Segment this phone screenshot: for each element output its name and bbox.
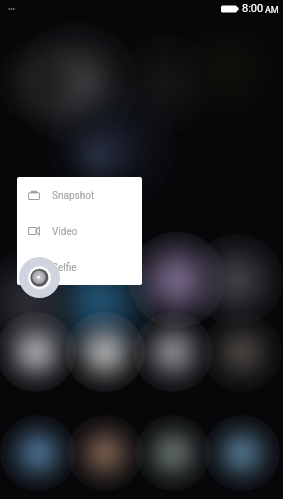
staticText: Video (52, 226, 78, 238)
staticText: AM (265, 5, 279, 16)
button[interactable]: Snapshot (17, 177, 142, 213)
staticText: 8:00 (242, 2, 264, 15)
button[interactable]: Selfie (17, 249, 142, 285)
button[interactable]: Camera shutter (19, 257, 60, 298)
staticText: Snapshot (52, 190, 95, 202)
staticText: Selfie (52, 262, 77, 274)
button[interactable]: Video (17, 213, 142, 249)
